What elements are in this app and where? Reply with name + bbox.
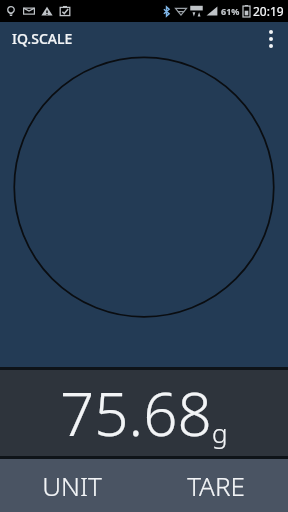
staticText: 75.68 bbox=[60, 372, 212, 454]
staticText: UNIT bbox=[42, 468, 102, 503]
staticText: 61% bbox=[221, 5, 240, 17]
button[interactable]: More options bbox=[254, 22, 288, 55]
button[interactable]: UNIT bbox=[0, 459, 144, 512]
staticText: g bbox=[212, 415, 228, 450]
button[interactable]: TARE bbox=[144, 459, 288, 512]
staticText: TARE bbox=[187, 468, 245, 503]
staticText: IQ.SCALE bbox=[12, 29, 73, 48]
staticText: 20:19 bbox=[253, 3, 284, 19]
